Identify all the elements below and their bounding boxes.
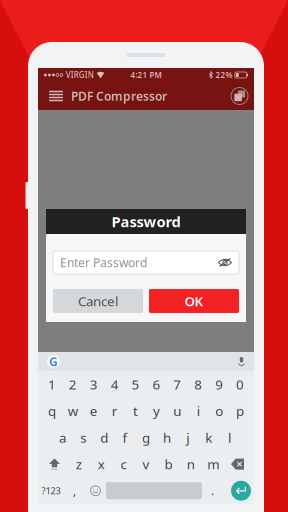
button[interactable]: e — [83, 398, 104, 424]
button[interactable]: g — [136, 424, 156, 451]
button[interactable]: 4 — [104, 371, 125, 398]
staticText: 0 — [236, 375, 244, 393]
staticText: 9 — [215, 375, 223, 393]
button[interactable]: k — [198, 424, 219, 451]
staticText: 3 — [90, 375, 98, 393]
button[interactable]: Voice input — [238, 356, 245, 366]
button[interactable]: 6 — [146, 371, 167, 398]
button[interactable]: 7 — [167, 371, 188, 398]
button[interactable]: Documents — [231, 87, 248, 104]
button[interactable]: z — [67, 451, 90, 477]
staticText: g — [142, 429, 150, 446]
button[interactable]: f — [115, 424, 136, 451]
button[interactable]: o — [209, 398, 230, 424]
staticText: 22% — [215, 70, 232, 80]
staticText: a — [59, 429, 66, 446]
staticText: b — [164, 455, 172, 473]
staticText: m — [207, 455, 219, 473]
staticText: u — [173, 402, 181, 420]
button[interactable]: s — [73, 424, 94, 451]
button[interactable]: x — [90, 451, 112, 477]
staticText: y — [153, 402, 160, 420]
button[interactable]: r — [104, 398, 125, 424]
button[interactable]: d — [94, 424, 115, 451]
button[interactable]: 8 — [188, 371, 209, 398]
button[interactable]: 5 — [125, 371, 146, 398]
staticText: OK — [184, 292, 203, 310]
staticText: d — [100, 429, 108, 446]
button[interactable]: . — [202, 477, 223, 504]
staticText: h — [163, 429, 171, 446]
staticText: 1 — [48, 375, 56, 393]
button[interactable]: Google — [47, 355, 60, 368]
staticText: , — [73, 483, 76, 499]
button[interactable]: j — [177, 424, 198, 451]
staticText: PDF Compressor — [71, 88, 167, 104]
button[interactable]: l — [219, 424, 240, 451]
button[interactable]: OK — [149, 289, 239, 313]
staticText: p — [236, 402, 244, 420]
button[interactable]: a — [52, 424, 73, 451]
staticText: 5 — [131, 375, 139, 393]
staticText: i — [197, 402, 200, 420]
staticText: r — [112, 402, 118, 420]
staticText: 7 — [173, 375, 181, 393]
button[interactable]: i — [188, 398, 209, 424]
staticText: w — [68, 402, 78, 420]
button[interactable]: 1 — [41, 371, 62, 398]
staticText: t — [133, 402, 138, 420]
staticText: c — [121, 455, 127, 473]
button[interactable]: h — [156, 424, 177, 451]
button[interactable]: Menu — [46, 86, 66, 106]
staticText: Password — [111, 212, 180, 231]
button[interactable]: Shift — [41, 451, 67, 477]
button[interactable]: y — [146, 398, 167, 424]
staticText: 2 — [69, 375, 77, 393]
staticText: q — [48, 402, 56, 420]
button[interactable]: p — [230, 398, 250, 424]
button[interactable]: b — [157, 451, 180, 477]
button[interactable]: 3 — [83, 371, 104, 398]
button[interactable]: Backspace — [224, 451, 250, 477]
staticText: j — [186, 429, 189, 446]
staticText: o — [215, 402, 223, 420]
button[interactable]: Enter — [231, 481, 251, 501]
staticText: z — [76, 455, 82, 473]
button[interactable]: t — [125, 398, 146, 424]
staticText: v — [142, 455, 149, 473]
staticText: s — [80, 429, 86, 446]
staticText: k — [205, 429, 212, 446]
button[interactable]: 0 — [230, 371, 250, 398]
button[interactable]: n — [180, 451, 202, 477]
staticText: 4 — [111, 375, 119, 393]
button[interactable]: m — [202, 451, 224, 477]
button[interactable]: Cancel — [53, 289, 143, 313]
staticText: l — [228, 429, 231, 446]
staticText: f — [123, 429, 128, 446]
button[interactable]: c — [112, 451, 135, 477]
button[interactable]: ?123 — [38, 477, 64, 504]
staticText: Enter Password — [60, 254, 147, 270]
button[interactable]: Space — [106, 477, 202, 504]
staticText: Cancel — [78, 292, 118, 310]
button[interactable]: v — [135, 451, 157, 477]
button[interactable]: 9 — [209, 371, 230, 398]
button[interactable]: w — [62, 398, 83, 424]
staticText: 6 — [152, 375, 160, 393]
staticText: n — [187, 455, 195, 473]
button[interactable]: , — [64, 477, 85, 504]
staticText: 4:21 PM — [130, 70, 161, 80]
button[interactable]: Emoji — [85, 477, 106, 504]
staticText: . — [211, 483, 214, 499]
staticText: e — [90, 402, 98, 420]
button[interactable]: u — [167, 398, 188, 424]
staticText: 8 — [194, 375, 202, 393]
staticText: ?123 — [41, 484, 60, 497]
staticText: G — [49, 353, 58, 369]
staticText: VIRGIN — [66, 70, 94, 80]
button[interactable]: 2 — [62, 371, 83, 398]
staticText: x — [98, 455, 105, 473]
button[interactable]: q — [41, 398, 62, 424]
